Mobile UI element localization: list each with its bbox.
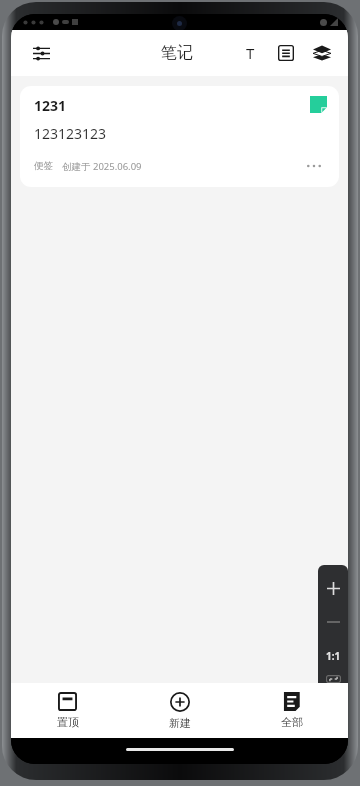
button[interactable]: List view bbox=[268, 35, 304, 71]
staticText: 创建于 2025.06.09 bbox=[62, 160, 142, 173]
button[interactable]: Text size bbox=[232, 35, 268, 71]
button[interactable]: Zoom in bbox=[320, 575, 346, 601]
button[interactable]: 新建 bbox=[124, 683, 236, 738]
button[interactable]: 1:1 bbox=[320, 643, 346, 669]
staticText: 便签 bbox=[34, 160, 53, 172]
button[interactable]: Fullscreen bbox=[320, 675, 346, 683]
staticText: 1231 bbox=[34, 96, 67, 115]
button[interactable]: Layers bbox=[304, 35, 340, 71]
staticText: 1:1 bbox=[326, 649, 341, 663]
staticText: 置顶 bbox=[57, 715, 79, 729]
button[interactable]: More options bbox=[301, 153, 327, 179]
staticText: 全部 bbox=[281, 715, 303, 729]
button[interactable]: Filter settings bbox=[23, 35, 59, 71]
button[interactable]: Zoom out bbox=[320, 609, 346, 635]
button[interactable]: 全部 bbox=[236, 683, 348, 738]
staticText: 笔记 bbox=[161, 43, 193, 63]
staticText: 123123123 bbox=[34, 124, 107, 143]
button[interactable]: 置顶 bbox=[11, 683, 124, 738]
button[interactable]: 1231 bbox=[20, 86, 339, 187]
staticText: T bbox=[246, 43, 255, 63]
staticText: 新建 bbox=[169, 716, 191, 730]
